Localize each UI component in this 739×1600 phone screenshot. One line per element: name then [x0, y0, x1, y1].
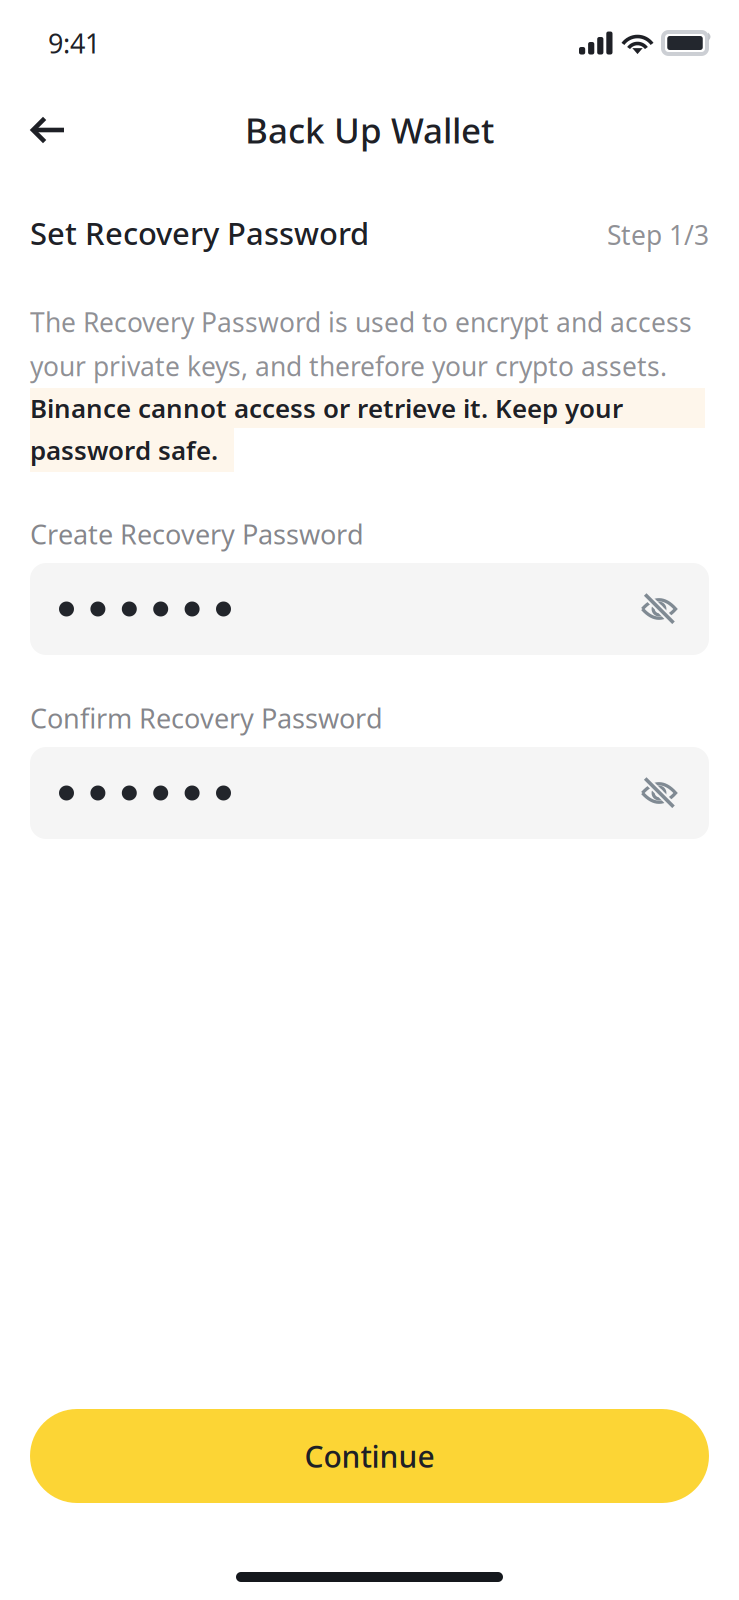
staticText: Create Recovery Password [30, 516, 364, 552]
button[interactable]: Show password [631, 583, 687, 634]
staticText: your private keys, and therefore your cr… [30, 348, 667, 384]
button[interactable]: Continue [30, 1409, 709, 1503]
button[interactable]: Show password [631, 767, 687, 818]
staticText: Continue [304, 1436, 434, 1476]
staticText: Step 1/3 [607, 217, 709, 253]
button[interactable]: Back [16, 94, 80, 166]
staticText: The Recovery Password is used to encrypt… [30, 304, 692, 340]
staticText: Set Recovery Password [30, 212, 369, 254]
staticText: password safe. [30, 432, 218, 468]
staticText: 9:41 [48, 25, 100, 61]
staticText: Back Up Wallet [245, 106, 494, 154]
staticText: Binance cannot access or retrieve it. Ke… [30, 390, 623, 426]
staticText: Confirm Recovery Password [30, 700, 383, 736]
